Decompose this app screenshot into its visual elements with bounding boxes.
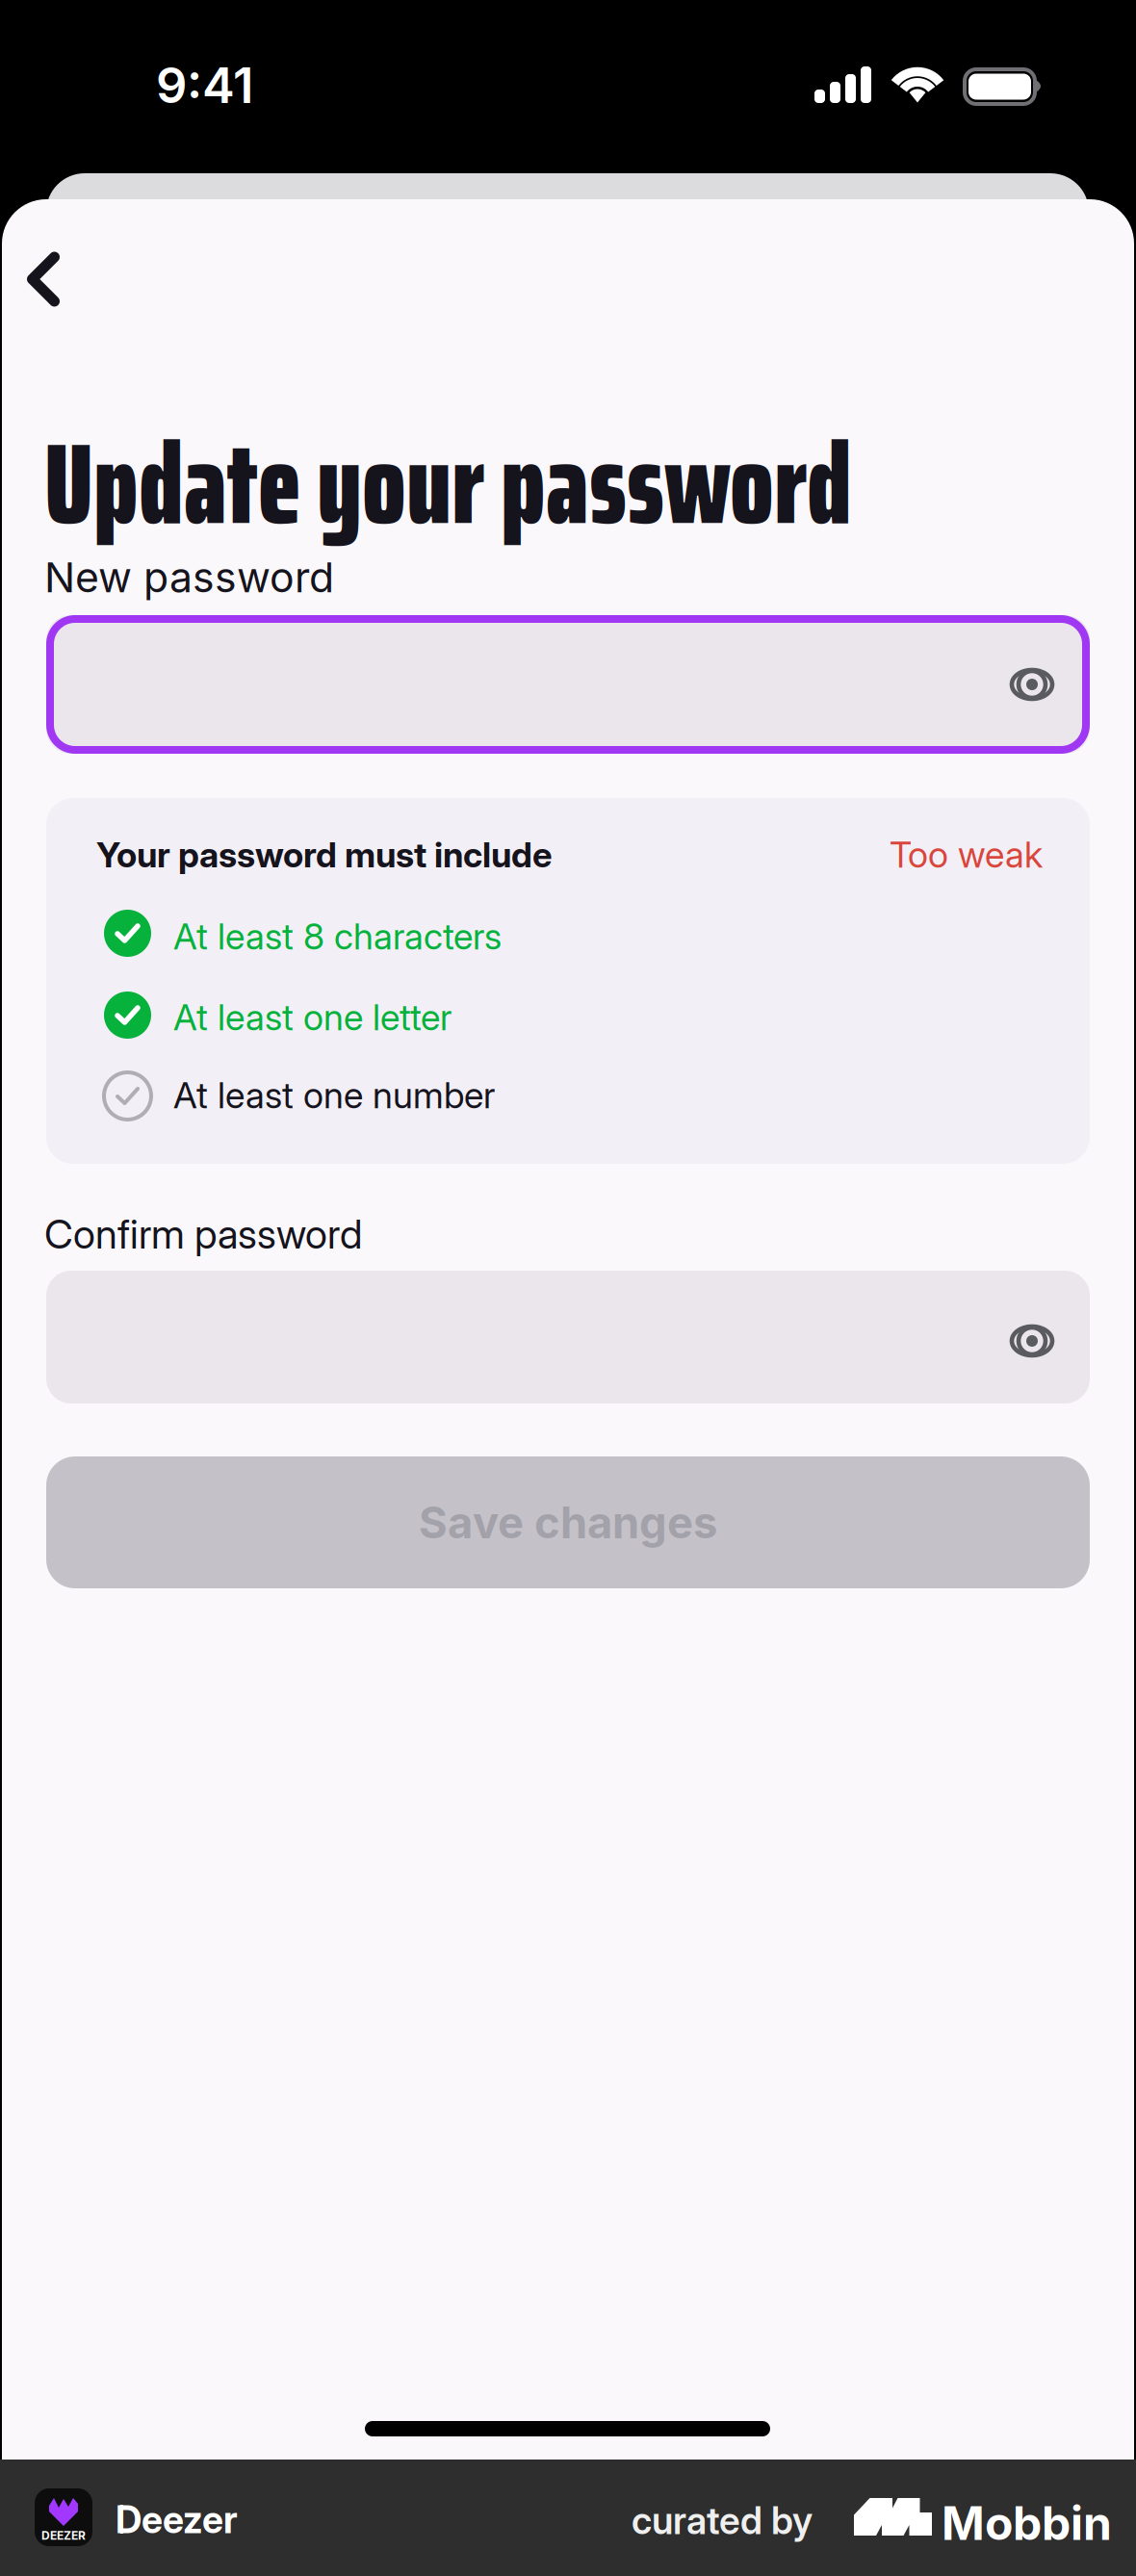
staticText: At least one letter	[173, 995, 452, 1039]
button[interactable]: Save changes	[46, 1456, 1090, 1588]
staticText: Save changes	[419, 1496, 717, 1549]
button[interactable]: Show confirm password	[986, 1295, 1078, 1387]
button[interactable]: Back	[0, 233, 87, 325]
staticText: At least one number	[173, 1073, 495, 1117]
button[interactable]: Show password	[986, 638, 1078, 731]
staticText: Deezer	[116, 2497, 238, 2542]
staticText: Too weak	[890, 833, 1043, 876]
staticText: DEEZER	[41, 2529, 86, 2543]
staticText: New password	[44, 553, 334, 602]
staticText: At least 8 characters	[173, 914, 502, 958]
staticText: Mobbin	[942, 2495, 1112, 2551]
staticText: 9:41	[156, 56, 253, 115]
staticText: Confirm password	[44, 1210, 362, 1258]
staticText: curated by	[632, 2498, 813, 2543]
staticText: Your password must include	[96, 834, 553, 876]
staticText: Update your password	[44, 395, 852, 572]
